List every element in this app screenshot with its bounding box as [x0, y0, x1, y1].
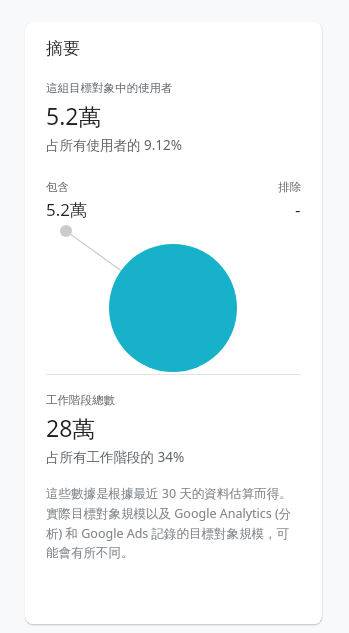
staticText: 這組目標對象中的使用者	[46, 81, 173, 95]
staticText: 排除	[278, 180, 301, 194]
staticText: -	[295, 198, 301, 221]
staticText: 占所有使用者的 9.12%	[46, 136, 183, 154]
staticText: 工作階段總數	[46, 393, 115, 407]
staticText: 這些數據是根據最近 30 天的資料估算而得。實際目標對象規模以及 Google …	[46, 485, 301, 561]
staticText: 包含	[46, 180, 69, 194]
staticText: 5.2萬	[46, 198, 88, 221]
staticText: 5.2萬	[46, 100, 102, 131]
button[interactable]: 摘要	[25, 22, 322, 624]
staticText: 占所有工作階段的 34%	[46, 448, 185, 466]
staticText: 摘要	[46, 38, 80, 59]
staticText: 28萬	[46, 412, 96, 443]
